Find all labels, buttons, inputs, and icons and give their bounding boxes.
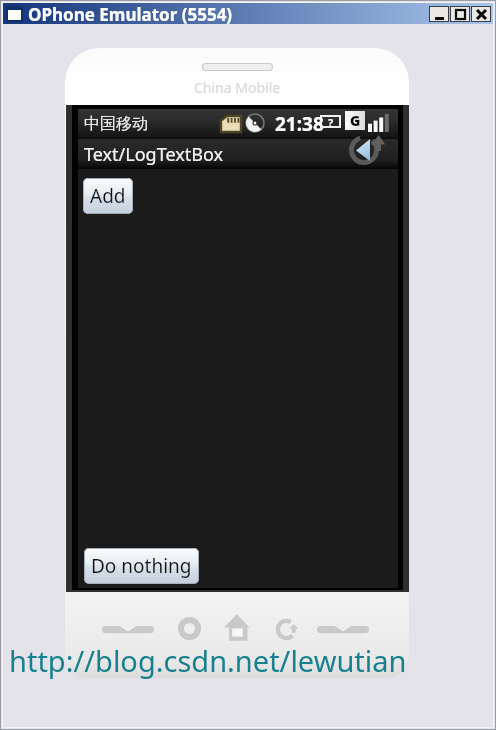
button[interactable]: Do nothing — [84, 548, 199, 584]
button[interactable]: Back — [271, 612, 301, 642]
staticText: Do nothing — [91, 553, 192, 579]
staticText: 21:38 — [275, 111, 324, 137]
button[interactable]: Key — [316, 622, 370, 636]
staticText: Add — [90, 183, 126, 209]
button[interactable]: Maximize — [450, 6, 470, 22]
staticText: Text/LogTextBox — [84, 142, 223, 167]
button[interactable]: Key — [101, 622, 155, 636]
staticText: G — [350, 111, 361, 130]
staticText: China Mobile — [194, 78, 281, 97]
button[interactable]: Minimize — [429, 6, 449, 22]
staticText: 中国移动 — [84, 114, 148, 134]
staticText: OPhone Emulator (5554) — [28, 3, 233, 24]
button[interactable]: Add — [83, 178, 133, 214]
button[interactable]: Close — [471, 6, 491, 22]
button[interactable]: Home — [223, 612, 251, 642]
staticText: http://blog.csdn.net/lewutian — [9, 641, 407, 680]
button[interactable]: Menu — [178, 617, 201, 640]
button[interactable]: Back — [342, 128, 386, 158]
staticText: ? — [328, 115, 334, 128]
